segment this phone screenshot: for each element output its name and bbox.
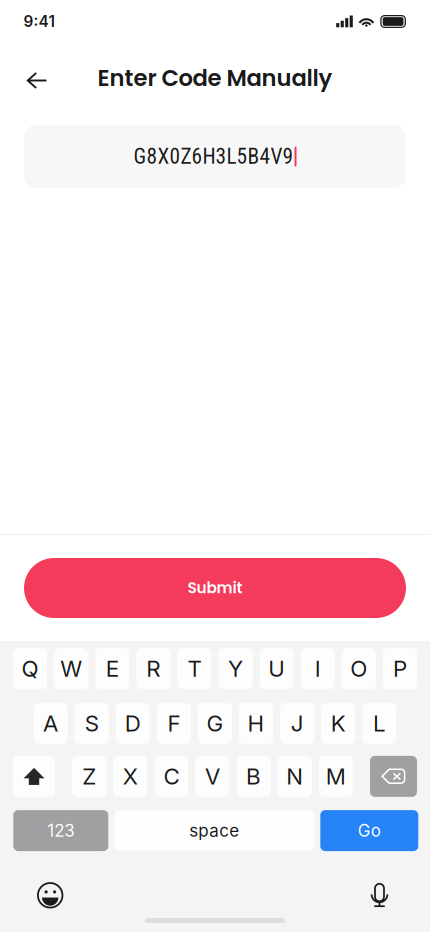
staticText: J [291, 710, 304, 737]
button[interactable]: Delete [370, 756, 417, 797]
staticText: N [286, 763, 303, 790]
button[interactable]: 123 [13, 810, 108, 851]
button[interactable]: Back [20, 59, 53, 96]
staticText: Y [228, 655, 243, 682]
staticText: O [350, 655, 367, 682]
button[interactable]: Y [219, 648, 253, 689]
button[interactable]: X [113, 756, 147, 797]
staticText: Submit [187, 577, 242, 599]
staticText: Z [82, 763, 96, 790]
staticText: Q [22, 655, 39, 682]
button[interactable]: J [280, 703, 314, 744]
button[interactable]: Emoji [28, 873, 72, 917]
button[interactable]: Go [320, 810, 418, 851]
button[interactable]: W [54, 648, 88, 689]
staticText: Go [358, 820, 381, 841]
button[interactable]: O [342, 648, 376, 689]
staticText: U [268, 655, 285, 682]
button[interactable]: C [154, 756, 188, 797]
button[interactable]: space [114, 810, 314, 851]
staticText: I [315, 655, 321, 682]
button[interactable]: Z [72, 756, 106, 797]
staticText: 123 [47, 820, 74, 841]
button[interactable]: P [383, 648, 417, 689]
button[interactable]: Submit [0, 558, 430, 618]
button[interactable]: L [362, 703, 396, 744]
staticText: M [326, 763, 346, 790]
button[interactable]: I [301, 648, 335, 689]
staticText: H [248, 710, 265, 737]
staticText: G8X0Z6H3L5B4V9 [133, 144, 293, 169]
button[interactable]: H [239, 703, 273, 744]
staticText: 9:41 [23, 12, 54, 31]
button[interactable]: A [34, 703, 68, 744]
staticText: S [85, 710, 99, 737]
button[interactable]: B [237, 756, 271, 797]
button[interactable]: T [177, 648, 211, 689]
button[interactable]: R [136, 648, 170, 689]
staticText: X [123, 763, 138, 790]
button[interactable]: U [260, 648, 294, 689]
button[interactable]: Q [13, 648, 47, 689]
staticText: B [246, 763, 261, 790]
staticText: L [373, 710, 386, 737]
staticText: C [163, 763, 179, 790]
button[interactable]: G [198, 703, 232, 744]
button[interactable]: M [319, 756, 353, 797]
staticText: T [187, 655, 201, 682]
button[interactable]: D [116, 703, 150, 744]
button[interactable]: K [321, 703, 355, 744]
staticText: P [393, 655, 407, 682]
button[interactable]: V [195, 756, 229, 797]
staticText: R [146, 655, 160, 682]
button[interactable]: E [95, 648, 129, 689]
staticText: V [205, 763, 220, 790]
button[interactable]: F [157, 703, 191, 744]
staticText: K [331, 710, 346, 737]
button[interactable]: S [75, 703, 109, 744]
staticText: Enter Code Manually [97, 62, 332, 94]
staticText: D [125, 710, 141, 737]
staticText: A [43, 710, 58, 737]
staticText: F [167, 710, 180, 737]
staticText: E [106, 655, 119, 682]
staticText: G [206, 710, 223, 737]
staticText: space [189, 820, 239, 841]
button[interactable]: N [278, 756, 312, 797]
button[interactable]: Dictation [362, 874, 397, 917]
staticText: W [60, 655, 82, 682]
button[interactable]: Shift [13, 756, 55, 797]
